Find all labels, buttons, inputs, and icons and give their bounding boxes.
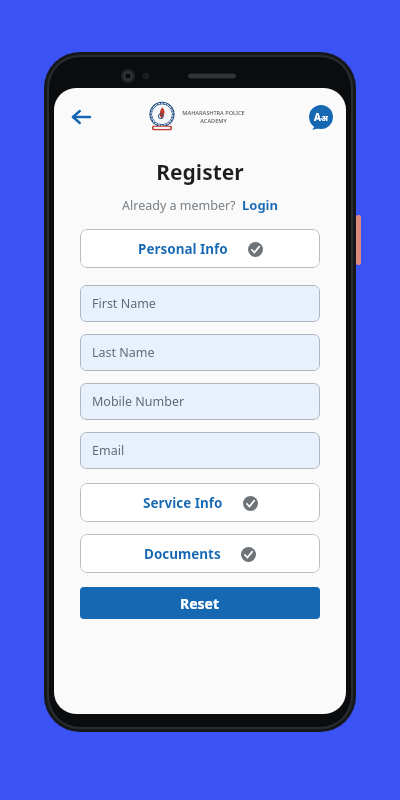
staticText: A (314, 110, 321, 124)
staticText: Register (54, 158, 346, 187)
staticText: Personal Info (138, 240, 228, 258)
button[interactable]: Login (242, 196, 278, 214)
button[interactable]: First Name (80, 285, 320, 322)
button[interactable]: Mobile Number (80, 383, 320, 420)
staticText: Documents (144, 545, 221, 563)
button[interactable]: Documents (80, 534, 320, 573)
staticText: अ (321, 112, 328, 123)
button[interactable]: Email (80, 432, 320, 469)
staticText: Mobile Number (92, 393, 185, 410)
button[interactable]: Reset (80, 587, 320, 619)
staticText: Service Info (143, 494, 223, 512)
staticText: Already a member? (122, 197, 236, 214)
button[interactable]: Change language (306, 102, 336, 132)
button[interactable]: Personal Info (80, 229, 320, 268)
button[interactable]: Back (64, 100, 98, 134)
button[interactable]: Service Info (80, 483, 320, 522)
staticText: Login (242, 196, 278, 214)
staticText: ACADEMY (200, 117, 227, 125)
staticText: Last Name (92, 344, 155, 361)
staticText: Reset (180, 594, 220, 613)
staticText: MAHARASHTRA POLICE (182, 109, 245, 117)
staticText: Email (92, 442, 125, 459)
button[interactable]: Last Name (80, 334, 320, 371)
staticText: First Name (92, 295, 156, 312)
